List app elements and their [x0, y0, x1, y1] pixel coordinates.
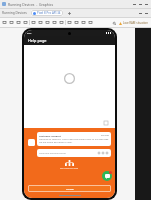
button[interactable]: Search: [111, 20, 117, 26]
button[interactable]: Emulator control 8: [51, 19, 58, 26]
button[interactable]: Add device: [66, 10, 72, 16]
staticText: 9:41: [27, 32, 32, 35]
button[interactable]: Emulator control 9: [58, 19, 65, 26]
button[interactable]: Window control: [143, 1, 149, 7]
staticText: just now: [101, 134, 109, 137]
staticText: Type here and press enter: [39, 152, 66, 155]
button[interactable]: Open chat: [102, 171, 112, 181]
button[interactable]: Emulator control 1: [1, 19, 8, 26]
button[interactable]: Tab option: [137, 10, 143, 16]
button[interactable]: Send: [105, 151, 109, 155]
button[interactable]: Tab option: [143, 10, 149, 16]
button[interactable]: Emulator control 5: [30, 19, 37, 26]
button[interactable]: Emulator control 6: [37, 19, 44, 26]
staticText: Low RAM situation: [123, 21, 149, 25]
button[interactable]: Attach file: [101, 151, 105, 155]
button[interactable]: Customer Support: [37, 132, 111, 146]
button[interactable]: Window control: [137, 1, 143, 7]
staticText: Running Devices - Graphics: [8, 2, 54, 7]
staticText: Running Devices: [2, 11, 27, 15]
button[interactable]: Emulator control 4: [22, 19, 29, 26]
button[interactable]: CLOSE: [28, 185, 111, 192]
staticText: Pixel 8 Pro API 34: [37, 11, 61, 15]
button[interactable]: Emulator control 12: [80, 19, 87, 26]
button[interactable]: Emulator control 11: [73, 19, 80, 26]
button[interactable]: Window control: [131, 1, 137, 7]
button[interactable]: Help page: [24, 36, 115, 45]
staticText: Customer Support: [39, 134, 61, 137]
button[interactable]: Emulator control 3: [15, 19, 22, 26]
button[interactable]: Emulator control 2: [8, 19, 15, 26]
staticText: CLOSE: [66, 187, 74, 190]
button[interactable]: Type here and press enter: [37, 149, 111, 157]
button[interactable]: Emulator control 13: [87, 19, 94, 26]
button[interactable]: Emulator control 7: [44, 19, 51, 26]
button[interactable]: Pixel 8 Pro API 34: [31, 10, 63, 16]
button[interactable]: Emoji: [97, 151, 101, 155]
staticText: Welcome to HelpPlus. If you need help si…: [39, 138, 109, 144]
staticText: Help page: [28, 38, 47, 43]
staticText: GET TAWK.TO FREE: [60, 167, 79, 170]
button[interactable]: Low RAM situation: [119, 21, 149, 25]
button[interactable]: Emulator control 10: [66, 19, 73, 26]
